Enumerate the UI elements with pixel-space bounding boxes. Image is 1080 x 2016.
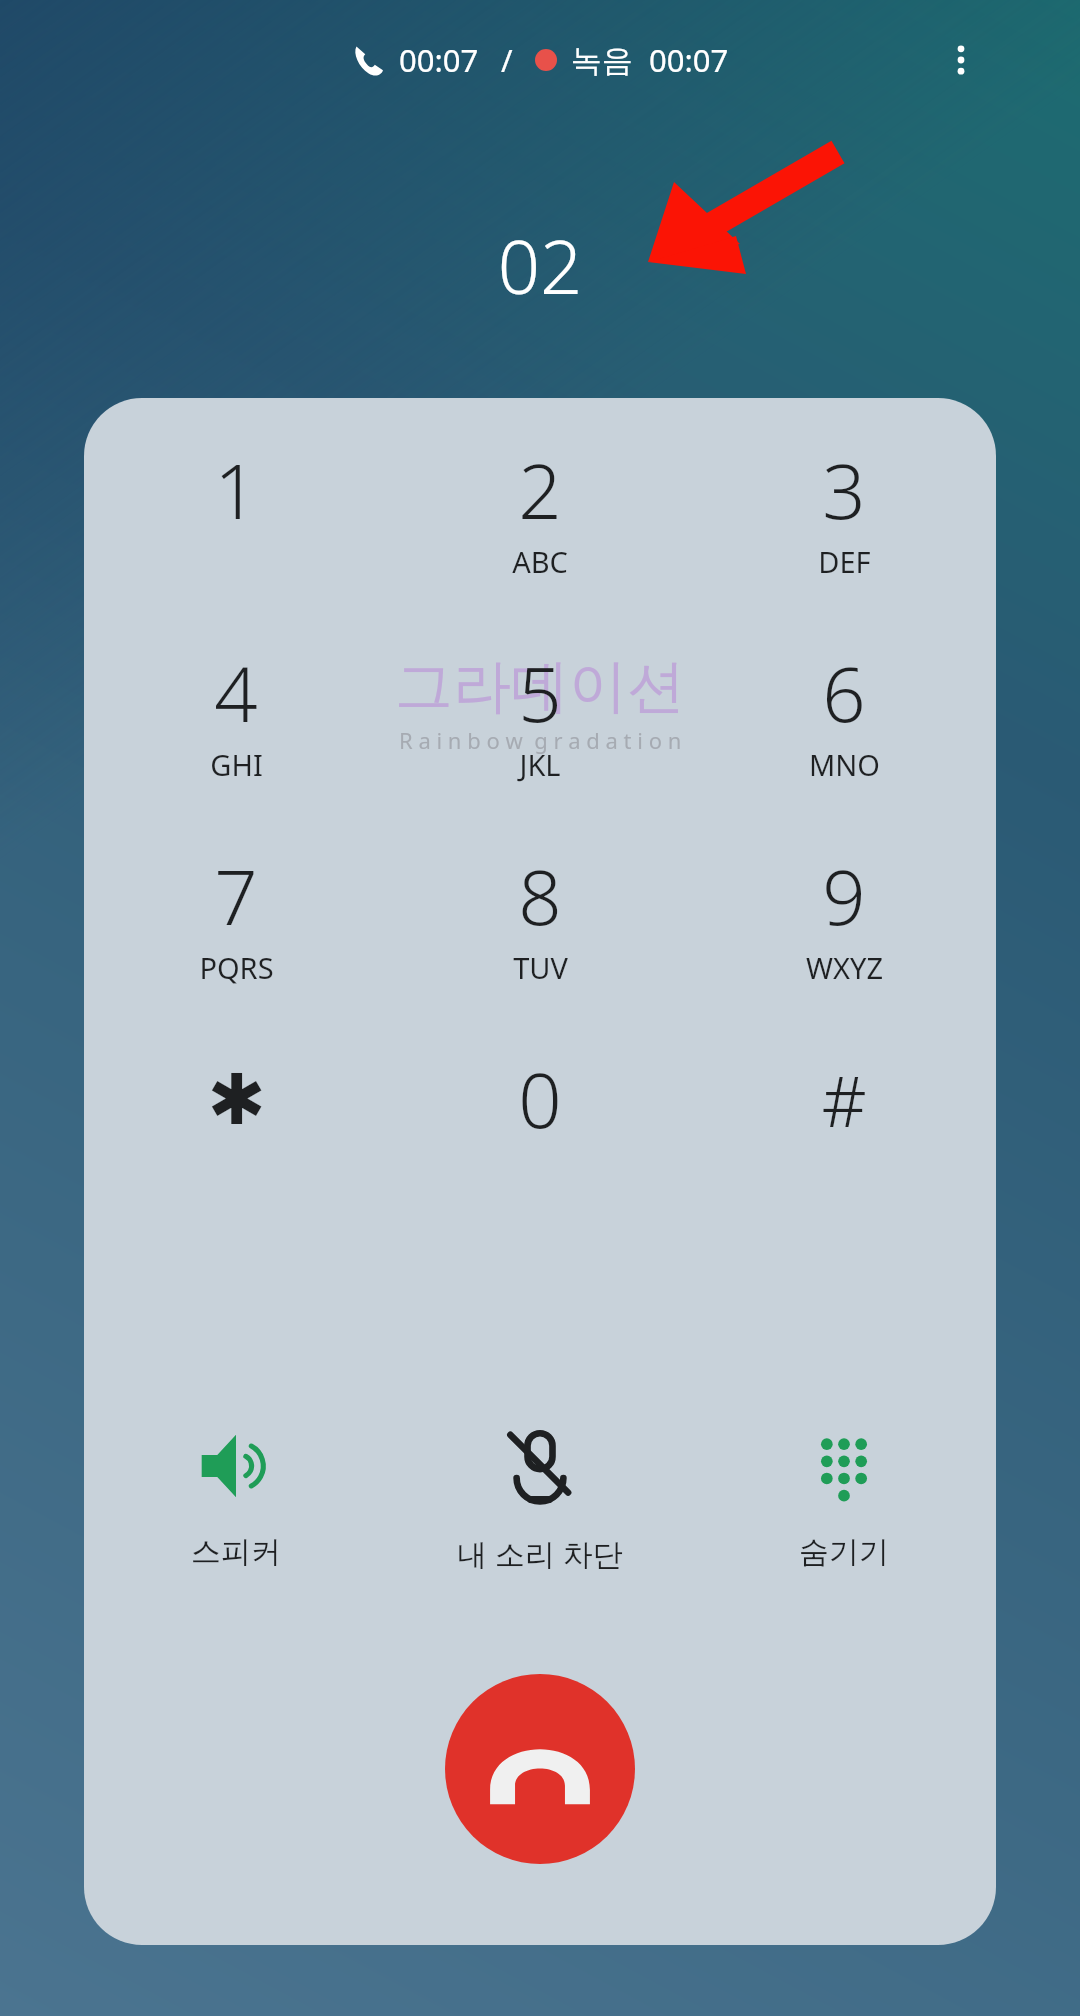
staticText: 9 bbox=[822, 844, 866, 948]
button[interactable]: 6 bbox=[692, 641, 996, 789]
staticText: WXYZ bbox=[806, 948, 883, 987]
staticText: 스피커 bbox=[191, 1533, 281, 1571]
staticText: TUV bbox=[513, 948, 568, 987]
staticText: ✱ bbox=[207, 1059, 266, 1140]
button[interactable]: 내 소리 차단 bbox=[388, 1415, 692, 1582]
button[interactable]: 5 bbox=[388, 641, 692, 789]
staticText: 3 bbox=[822, 438, 866, 542]
button[interactable]: More options bbox=[930, 29, 992, 91]
button[interactable]: End call bbox=[445, 1674, 635, 1864]
button[interactable]: ✱ bbox=[84, 1047, 388, 1195]
staticText: 그라데이션 bbox=[395, 650, 685, 723]
button[interactable]: 7 bbox=[84, 844, 388, 992]
staticText: ABC bbox=[512, 542, 568, 581]
button[interactable]: 스피커 bbox=[84, 1415, 388, 1579]
staticText: JKL bbox=[519, 745, 561, 784]
button[interactable]: 2 bbox=[388, 438, 692, 586]
staticText: R a i n b o w g r a d a t i o n bbox=[399, 725, 682, 755]
staticText: PQRS bbox=[199, 948, 274, 987]
staticText: 숨기기 bbox=[799, 1533, 889, 1571]
staticText: DEF bbox=[818, 542, 871, 581]
button[interactable]: 8 bbox=[388, 844, 692, 992]
staticText: / bbox=[501, 39, 513, 81]
staticText: 00:07 bbox=[399, 39, 479, 81]
button[interactable]: 9 bbox=[692, 844, 996, 992]
staticText: 0 bbox=[518, 1047, 562, 1151]
button[interactable]: 0 bbox=[388, 1047, 692, 1195]
staticText: 4 bbox=[214, 641, 258, 745]
button[interactable]: 숨기기 bbox=[692, 1415, 996, 1579]
staticText: GHI bbox=[210, 745, 263, 784]
staticText: 02 bbox=[0, 215, 1080, 316]
button[interactable]: 3 bbox=[692, 438, 996, 586]
staticText: 내 소리 차단 bbox=[457, 1533, 623, 1574]
staticText: 5 bbox=[518, 641, 562, 745]
staticText: 2 bbox=[518, 438, 562, 542]
staticText: # bbox=[821, 1052, 867, 1147]
button[interactable]: 4 bbox=[84, 641, 388, 789]
staticText: 6 bbox=[822, 641, 866, 745]
staticText: MNO bbox=[809, 745, 880, 784]
staticText: 00:07 bbox=[649, 39, 729, 81]
staticText: 7 bbox=[214, 844, 258, 948]
staticText: 1 bbox=[214, 438, 258, 542]
button[interactable]: # bbox=[692, 1047, 996, 1195]
button[interactable]: 1 bbox=[84, 438, 388, 586]
staticText: 녹음 bbox=[571, 41, 633, 80]
staticText: 8 bbox=[518, 844, 562, 948]
